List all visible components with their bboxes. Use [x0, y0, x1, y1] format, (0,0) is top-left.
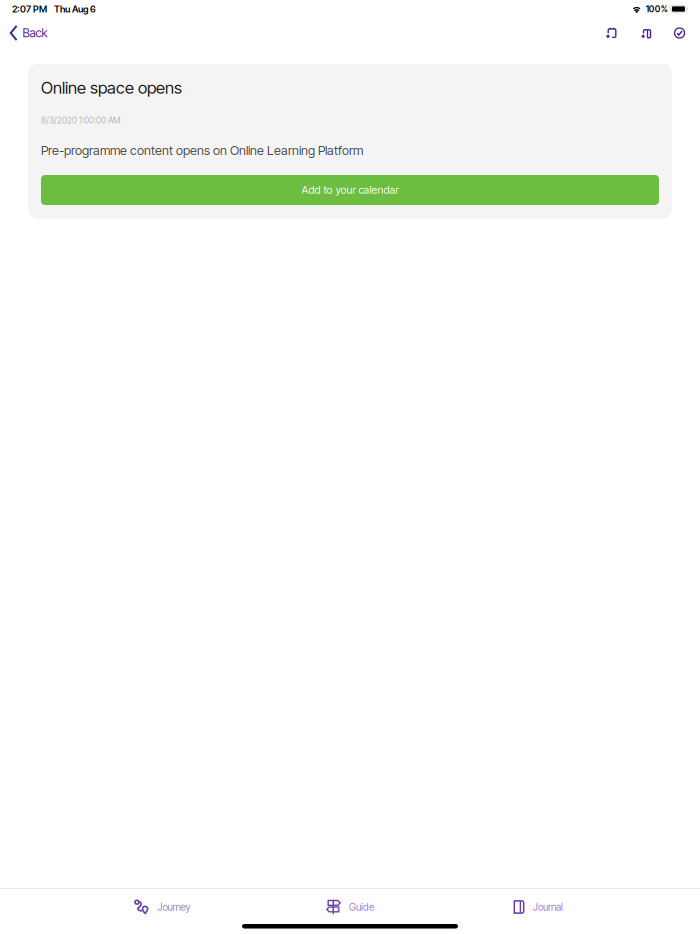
staticText: Journal	[533, 901, 563, 913]
button[interactable]: Back	[1, 18, 55, 48]
button[interactable]: Journey	[68, 888, 256, 926]
staticText: Thu Aug 6	[54, 3, 96, 15]
button[interactable]: Add to your calendar	[41, 175, 659, 205]
staticText: Back	[22, 26, 47, 40]
button[interactable]: Add journal entry	[629, 20, 664, 46]
staticText: Journey	[157, 901, 190, 913]
button[interactable]: Mark complete	[664, 20, 695, 46]
button[interactable]: Guide	[256, 888, 444, 926]
staticText: 8/3/2020 1:00:00 AM	[41, 115, 120, 126]
staticText: 2:07 PM	[12, 3, 47, 15]
button[interactable]: Journal	[444, 888, 632, 926]
staticText: Guide	[349, 901, 374, 913]
staticText: Online space opens	[41, 77, 182, 98]
button[interactable]: Add to calendar	[594, 20, 629, 46]
staticText: 100%	[646, 4, 668, 14]
staticText: Add to your calendar	[301, 183, 398, 196]
staticText: Pre-programme content opens on Online Le…	[41, 143, 363, 158]
